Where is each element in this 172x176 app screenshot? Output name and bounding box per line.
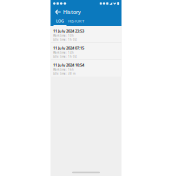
staticText: Work time: 16h <box>53 68 74 71</box>
staticText: HISTORY <box>68 18 84 24</box>
button[interactable]: 11 July 2024 07:15 <box>50 43 121 60</box>
staticText: 11 July 2024 23:53 <box>53 28 84 33</box>
staticText: Work time: 10h <box>53 34 74 37</box>
staticText: Idle time: 1h 04 <box>53 55 77 58</box>
staticText: LOG <box>56 18 64 24</box>
button[interactable]: HISTORY <box>66 17 85 26</box>
staticText: 11 July 2024 10:54 <box>53 62 84 67</box>
staticText: History <box>63 8 81 16</box>
button[interactable]: 11 July 2024 23:53 <box>50 26 121 43</box>
button[interactable]: LOG <box>53 17 66 26</box>
button[interactable]: Back <box>53 7 63 17</box>
staticText: Work time: 14h <box>53 51 74 54</box>
staticText: Idle time: 38 m <box>53 72 75 75</box>
button[interactable]: 11 July 2024 10:54 <box>50 60 121 77</box>
staticText: 11 July 2024 07:15 <box>53 45 84 50</box>
staticText: Idle time: 1h 04 <box>53 38 77 41</box>
